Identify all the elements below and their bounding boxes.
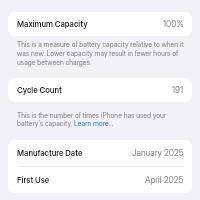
button[interactable]: Cycle Count (8, 78, 192, 102)
button[interactable]: First Use (8, 167, 192, 193)
staticText: Maximum Capacity (17, 19, 88, 29)
staticText: 100% (163, 19, 184, 29)
staticText: Manufacture Date (17, 148, 83, 158)
staticText: This is the number of times iPhone has u… (17, 111, 167, 119)
staticText: Cycle Count (17, 85, 62, 95)
button[interactable]: Manufacture Date (8, 140, 192, 166)
staticText: April 2025 (145, 175, 184, 185)
staticText: This is a measure of battery capacity re… (17, 40, 184, 67)
staticText: battery's capacity. (17, 119, 74, 127)
button[interactable]: Maximum Capacity (8, 12, 192, 36)
staticText: First Use (17, 175, 50, 185)
staticText: January 2025 (132, 148, 184, 158)
button[interactable]: Learn more... (74, 119, 114, 127)
staticText: 191 (172, 85, 184, 95)
